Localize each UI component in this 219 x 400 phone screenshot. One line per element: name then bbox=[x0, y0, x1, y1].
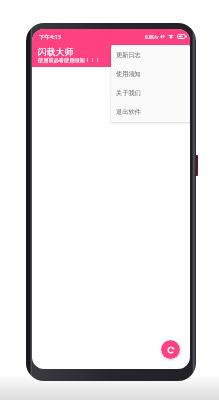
staticText: 关于我们 bbox=[116, 89, 141, 97]
staticText: 使用前必看使用须知！！！ bbox=[38, 57, 101, 64]
staticText: 更新日志 bbox=[116, 51, 141, 59]
button[interactable]: 更新日志 bbox=[111, 45, 190, 64]
staticText: 下午4:13 bbox=[39, 33, 61, 41]
staticText: 0.0K/s bbox=[145, 34, 158, 40]
button[interactable]: Refresh bbox=[161, 340, 180, 359]
button[interactable]: 退出软件 bbox=[111, 102, 190, 121]
staticText: 退出软件 bbox=[116, 108, 141, 116]
button[interactable]: 关于我们 bbox=[111, 83, 190, 102]
button[interactable]: 使用须知 bbox=[111, 64, 190, 83]
staticText: 闪载大师 bbox=[38, 47, 74, 58]
staticText: 使用须知 bbox=[116, 70, 141, 78]
